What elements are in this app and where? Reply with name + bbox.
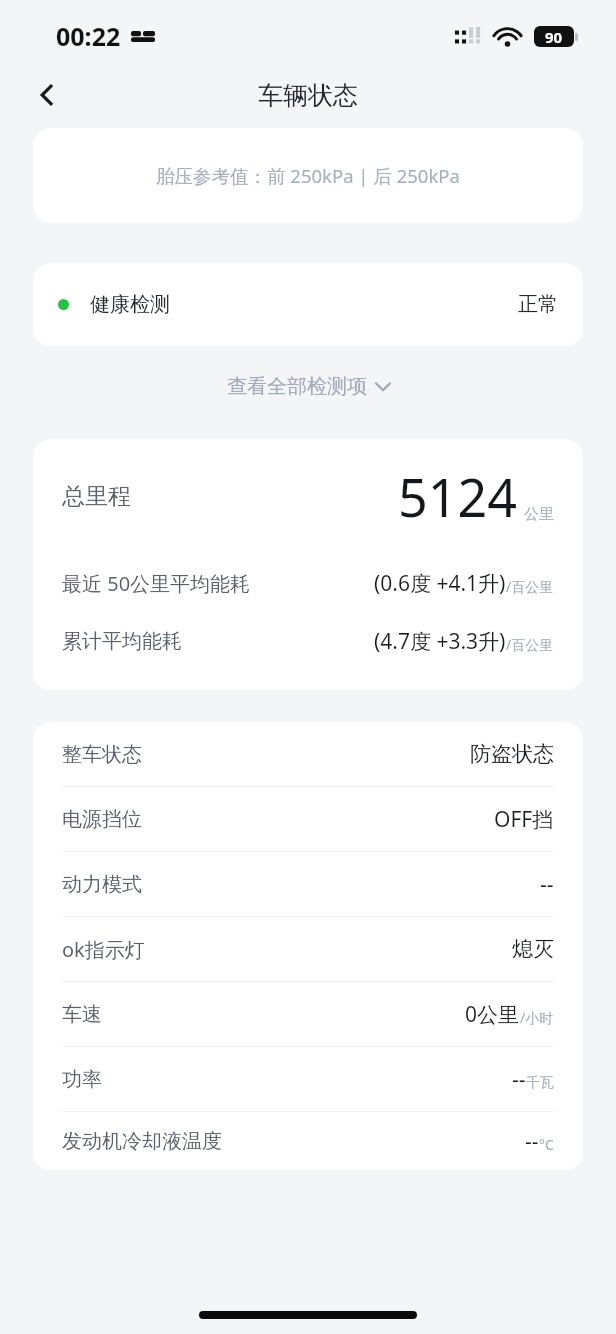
staticText: 0公里 [465, 1000, 520, 1029]
button[interactable]: Back [22, 72, 72, 118]
staticText: 功率 [62, 1067, 102, 1092]
button[interactable]: 车速 [33, 982, 583, 1046]
staticText: 00:22 [56, 19, 121, 53]
button[interactable]: 总里程 [33, 439, 583, 690]
staticText: -- [540, 870, 554, 899]
staticText: °C [539, 1135, 554, 1154]
staticText: 健康检测 [90, 292, 170, 317]
staticText: 5124 [398, 461, 517, 532]
button[interactable]: 功率 [33, 1047, 583, 1111]
staticText: 胎压参考值：前 250kPa | 后 250kPa [156, 163, 460, 188]
staticText: 防盗状态 [470, 741, 554, 767]
staticText: 动力模式 [62, 872, 142, 897]
staticText: 最近 50公里平均能耗 [62, 570, 251, 597]
staticText: ok指示灯 [62, 936, 145, 963]
staticText: /百公里 [506, 635, 554, 654]
staticText: (0.6度 +4.1升) [374, 569, 506, 598]
staticText: 查看全部检测项 [227, 374, 367, 399]
staticText: OFF挡 [494, 805, 554, 834]
staticText: 总里程 [62, 482, 131, 511]
button[interactable]: ok指示灯 [33, 917, 583, 981]
button[interactable]: 动力模式 [33, 852, 583, 916]
staticText: -- [525, 1127, 539, 1156]
staticText: 车速 [62, 1002, 102, 1027]
staticText: 正常 [518, 292, 558, 317]
staticText: 千瓦 [526, 1074, 554, 1092]
staticText: 公里 [524, 505, 554, 524]
button[interactable]: 整车状态 [33, 722, 583, 786]
staticText: (4.7度 +3.3升) [374, 627, 506, 656]
staticText: 90 [545, 27, 563, 47]
button[interactable]: 发动机冷却液温度 [33, 1112, 583, 1170]
staticText: /小时 [520, 1008, 554, 1027]
button[interactable]: 健康检测 [33, 263, 583, 346]
staticText: 车辆状态 [258, 80, 358, 111]
staticText: 累计平均能耗 [62, 629, 182, 654]
staticText: 发动机冷却液温度 [62, 1129, 222, 1154]
staticText: -- [512, 1065, 526, 1094]
button[interactable]: 电源挡位 [33, 787, 583, 851]
staticText: /百公里 [506, 577, 554, 596]
staticText: 整车状态 [62, 742, 142, 767]
staticText: 熄灭 [512, 936, 554, 962]
button[interactable]: 查看全部检测项 [0, 366, 616, 406]
button[interactable]: 胎压参考值：前 250kPa | 后 250kPa [33, 128, 583, 223]
staticText: 电源挡位 [62, 807, 142, 832]
